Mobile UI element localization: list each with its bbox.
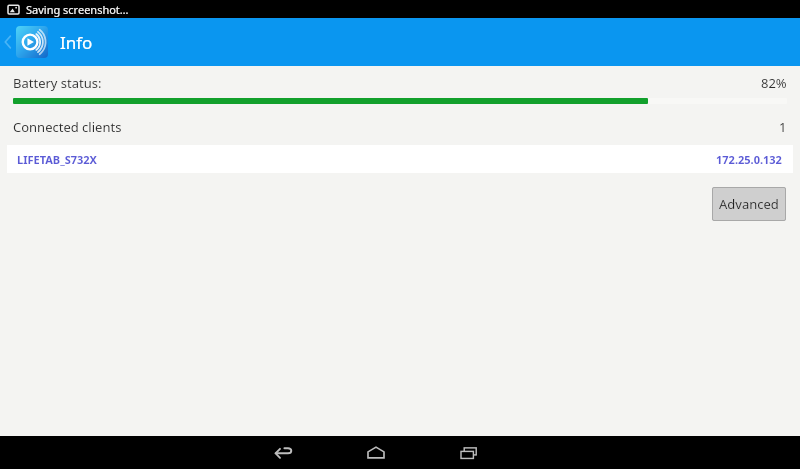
staticText: Connected clients [13,118,122,136]
staticText: Battery status: [13,74,102,92]
staticText: LIFETAB_S732X [17,152,97,167]
button[interactable]: Home [352,436,400,469]
staticText: 82% [761,74,787,92]
staticText: Advanced [719,195,779,213]
button[interactable]: Advanced [712,187,786,221]
staticText: Saving screenshot… [26,2,129,17]
staticText: 1 [779,118,787,136]
button[interactable]: LIFETAB_S732X [7,145,793,173]
button[interactable]: Recent apps [445,436,493,469]
staticText: Info [60,31,93,54]
button[interactable]: Navigate up [0,18,16,66]
button[interactable]: Back [260,436,308,469]
staticText: 172.25.0.132 [716,152,782,167]
